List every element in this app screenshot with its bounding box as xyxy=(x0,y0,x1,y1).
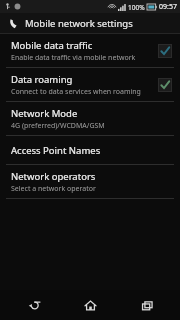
staticText: 09:57 xyxy=(159,2,177,12)
button[interactable]: Back xyxy=(11,290,57,320)
staticText: Select a network operator xyxy=(11,184,96,194)
staticText: 4G (preferred)/WCDMA/GSM xyxy=(11,121,105,131)
button[interactable]: Phone xyxy=(0,13,180,33)
staticText: Connect to data services when roaming xyxy=(11,87,141,97)
staticText: Mobile network settings xyxy=(25,17,133,30)
button[interactable]: Access Point Names xyxy=(0,136,180,164)
button[interactable]: Network Mode xyxy=(0,102,180,135)
staticText: Data roaming xyxy=(11,73,73,86)
staticText: Access Point Names xyxy=(11,144,101,157)
staticText: Network operators xyxy=(11,170,96,183)
staticText: Mobile data traffic xyxy=(11,39,93,52)
button[interactable]: Home xyxy=(67,290,113,320)
staticText: Enable data traffic via mobile network xyxy=(11,53,136,63)
button[interactable]: Mobile data traffic xyxy=(0,34,180,67)
other: Mobile data traffic xyxy=(158,44,172,58)
staticText: Network Mode xyxy=(11,107,78,120)
other: Phone xyxy=(7,17,20,30)
button[interactable]: Data roaming xyxy=(0,68,180,101)
staticText: 100% xyxy=(128,3,145,12)
button[interactable]: Recent apps xyxy=(124,290,170,320)
other: Data roaming xyxy=(158,78,172,92)
button[interactable]: Network operators xyxy=(0,165,180,198)
